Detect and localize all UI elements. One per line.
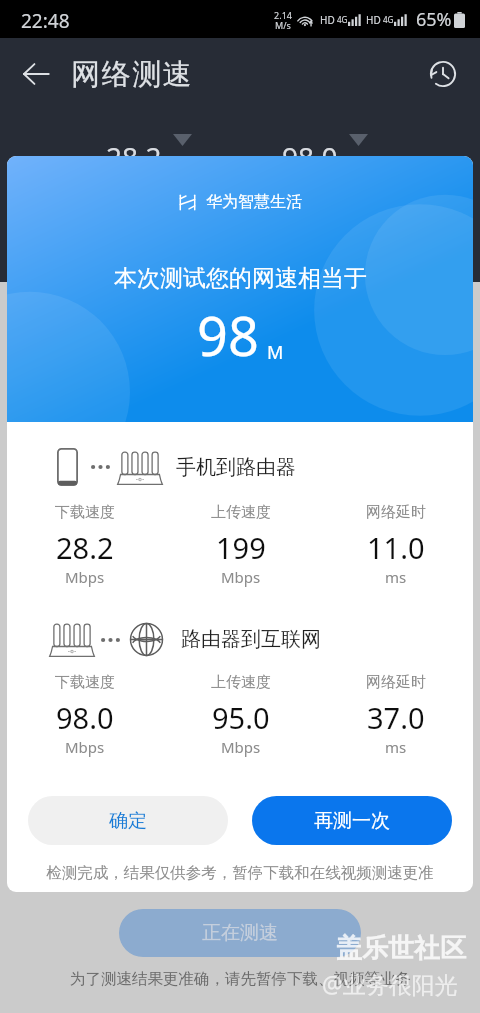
staticText: 正在测速 xyxy=(202,921,278,945)
staticText: 上传速度 xyxy=(211,673,271,692)
staticText: HD xyxy=(366,13,381,27)
staticText: 网络延时 xyxy=(366,503,426,522)
staticText: 37.0 xyxy=(367,698,425,737)
staticText: 28.2 xyxy=(106,138,162,176)
staticText: 65% xyxy=(416,7,452,32)
staticText: 上传速度 xyxy=(211,503,271,522)
staticText: ms xyxy=(385,737,407,757)
button[interactable]: History xyxy=(417,48,469,100)
staticText: 再测一次 xyxy=(314,809,390,833)
staticText: @业务很阳光 xyxy=(322,968,458,999)
staticText: 98 xyxy=(197,298,259,372)
staticText: 盖乐世社区 xyxy=(336,932,466,965)
staticText: 手机到路由器 xyxy=(176,455,296,480)
staticText: Mbps xyxy=(65,567,105,587)
staticText: 本次测试您的网速相当于 xyxy=(114,264,367,293)
staticText: ms xyxy=(385,567,407,587)
staticText: 98.0 xyxy=(282,138,338,176)
staticText: Mbps xyxy=(65,737,105,757)
staticText: M xyxy=(267,340,284,365)
staticText: HD xyxy=(320,13,335,27)
staticText: Mbps xyxy=(221,737,261,757)
staticText: 95.0 xyxy=(212,698,270,737)
staticText: 华为智慧生活 xyxy=(206,192,302,212)
staticText: 为了测速结果更准确，请先暂停下载、视频等业务 xyxy=(70,969,411,989)
button[interactable]: 正在测速 xyxy=(119,909,361,957)
staticText: 确定 xyxy=(109,809,147,833)
staticText: 4G xyxy=(383,14,394,25)
staticText: 检测完成，结果仅供参考，暂停下载和在线视频测速更准 xyxy=(7,863,473,883)
staticText: 28.2 xyxy=(56,528,114,567)
staticText: 22:48 xyxy=(21,8,70,34)
staticText: 下载速度 xyxy=(55,503,115,522)
staticText: 下载速度 xyxy=(55,673,115,692)
button[interactable]: 再测一次 xyxy=(252,796,452,845)
staticText: 网络测速 xyxy=(71,56,194,93)
staticText: 2.14 M/s xyxy=(274,9,292,31)
staticText: 网络延时 xyxy=(366,673,426,692)
staticText: 路由器到互联网 xyxy=(181,627,321,652)
staticText: 98.0 xyxy=(56,698,114,737)
button[interactable]: 确定 xyxy=(28,796,228,845)
button[interactable]: Back xyxy=(10,48,62,100)
staticText: 4G xyxy=(337,14,348,25)
staticText: 11.0 xyxy=(367,528,425,567)
staticText: Mbps xyxy=(221,567,261,587)
staticText: 199 xyxy=(216,528,266,567)
